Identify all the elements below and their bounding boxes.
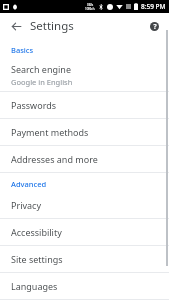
staticText: Advanced [11,179,47,189]
staticText: Google in English [11,77,73,87]
button[interactable]: Passwords [0,92,169,118]
staticText: Basics [11,45,34,55]
button[interactable]: Privacy [0,192,169,218]
staticText: Accessibility [11,226,62,238]
button[interactable]: Accessibility [0,219,169,245]
staticText: 10Kb/s [85,7,95,11]
staticText: ? [153,22,157,31]
staticText: Passwords [11,99,57,111]
button[interactable]: Search engine [0,58,169,91]
staticText: Addresses and more [11,153,98,165]
button[interactable]: Payment methods [0,119,169,145]
staticText: Privacy [11,199,42,211]
staticText: Settings [30,18,74,34]
button[interactable]: Addresses and more [0,146,169,172]
button[interactable]: Help [145,17,163,35]
staticText: 8:59 PM [141,2,166,11]
staticText: Payment methods [11,126,89,138]
button[interactable]: Languages [0,273,169,299]
button[interactable]: Back [7,17,25,35]
staticText: Site settings [11,253,63,265]
staticText: Search engine [11,63,71,75]
staticText: Languages [11,280,58,292]
button[interactable]: Site settings [0,246,169,272]
staticText: 0B/s [87,3,94,7]
